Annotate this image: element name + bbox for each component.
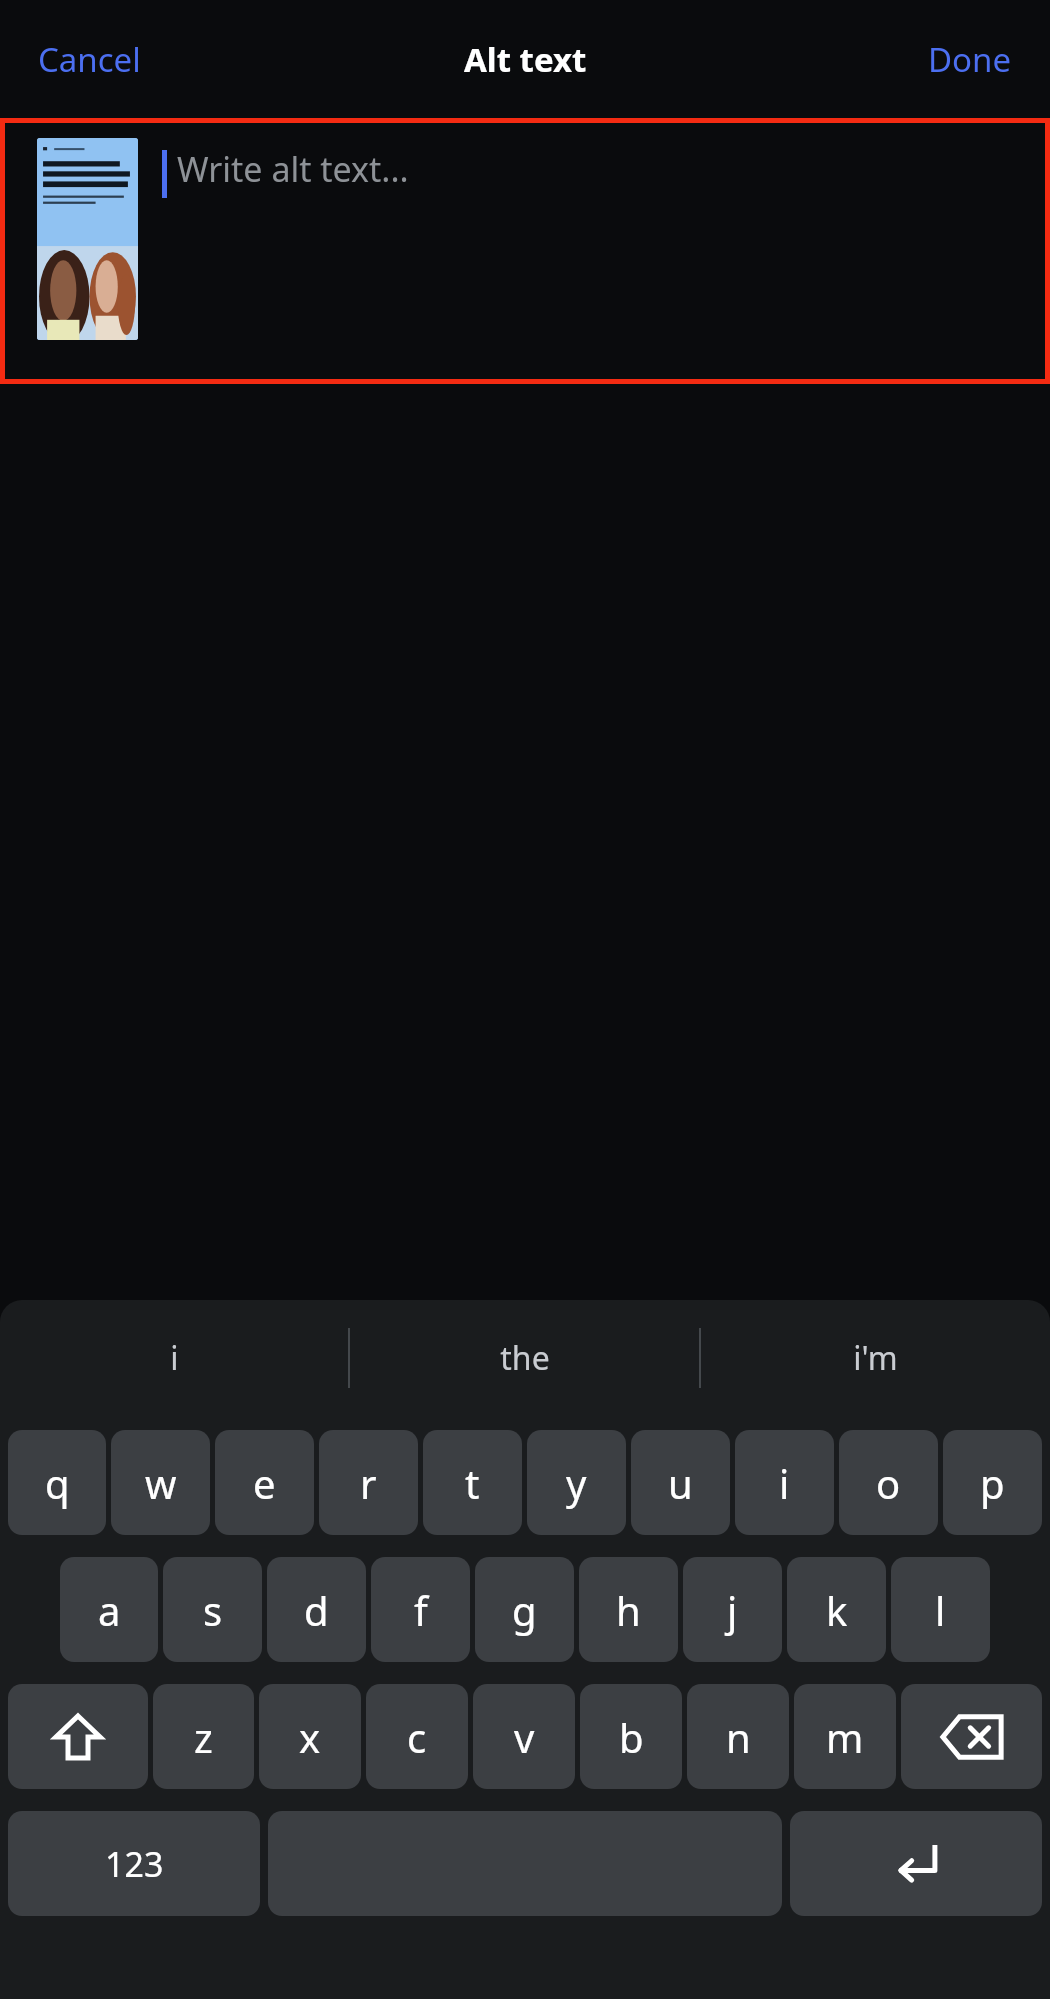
button[interactable]: m — [794, 1684, 896, 1789]
staticText: b — [619, 1710, 644, 1764]
button[interactable]: h — [579, 1557, 678, 1662]
staticText: h — [616, 1583, 641, 1637]
button[interactable]: r — [319, 1430, 418, 1535]
staticText: i — [170, 1336, 179, 1380]
button[interactable]: Cancel — [20, 27, 159, 92]
staticText: n — [726, 1710, 751, 1764]
button[interactable]: f — [371, 1557, 470, 1662]
staticText: g — [512, 1583, 537, 1637]
staticText: Cancel — [38, 37, 141, 82]
staticText: d — [304, 1583, 329, 1637]
staticText: the — [500, 1336, 550, 1380]
staticText: f — [414, 1583, 428, 1637]
button[interactable]: v — [473, 1684, 575, 1789]
button[interactable]: Enter — [790, 1811, 1042, 1916]
staticText: y — [566, 1456, 587, 1510]
staticText: r — [360, 1456, 377, 1510]
button[interactable]: n — [687, 1684, 789, 1789]
button[interactable]: Shift — [8, 1684, 148, 1789]
staticText: i — [779, 1456, 790, 1510]
staticText: w — [145, 1456, 177, 1510]
button[interactable]: y — [527, 1430, 626, 1535]
staticText: k — [826, 1583, 848, 1637]
button[interactable]: z — [153, 1684, 254, 1789]
button[interactable]: the — [350, 1300, 699, 1416]
staticText: c — [407, 1710, 427, 1764]
button[interactable]: 123 — [8, 1811, 260, 1916]
button[interactable]: i — [735, 1430, 834, 1535]
staticText: Alt text — [464, 37, 587, 82]
staticText: t — [465, 1456, 480, 1510]
button[interactable]: g — [475, 1557, 574, 1662]
button[interactable]: q — [8, 1430, 106, 1535]
staticText: i'm — [853, 1336, 898, 1380]
button[interactable]: Done — [910, 27, 1030, 92]
button[interactable]: u — [631, 1430, 730, 1535]
staticText: m — [826, 1710, 864, 1764]
button[interactable]: i — [0, 1300, 348, 1416]
staticText: Write alt text... — [177, 146, 409, 192]
button[interactable]: l — [891, 1557, 990, 1662]
button[interactable]: b — [580, 1684, 682, 1789]
button[interactable]: k — [787, 1557, 886, 1662]
staticText: v — [514, 1710, 535, 1764]
staticText: 123 — [105, 1841, 164, 1887]
other: Attached image — [37, 138, 138, 340]
staticText: q — [45, 1456, 70, 1510]
button[interactable]: c — [366, 1684, 468, 1789]
staticText: u — [668, 1456, 693, 1510]
staticText: x — [299, 1710, 321, 1764]
button[interactable]: Backspace — [901, 1684, 1042, 1789]
button[interactable]: Attached image — [0, 118, 1050, 384]
staticText: o — [876, 1456, 901, 1510]
button[interactable]: p — [943, 1430, 1042, 1535]
button[interactable]: o — [839, 1430, 938, 1535]
staticText: s — [203, 1583, 223, 1637]
button[interactable]: x — [259, 1684, 361, 1789]
button[interactable]: d — [267, 1557, 366, 1662]
button[interactable]: w — [111, 1430, 210, 1535]
staticText: e — [253, 1456, 276, 1510]
staticText: Done — [928, 37, 1012, 82]
button[interactable]: a — [60, 1557, 158, 1662]
button[interactable]: t — [423, 1430, 522, 1535]
button[interactable]: s — [163, 1557, 262, 1662]
staticText: p — [980, 1456, 1005, 1510]
staticText: j — [727, 1583, 738, 1637]
button[interactable]: e — [215, 1430, 314, 1535]
staticText: l — [935, 1583, 946, 1637]
button[interactable]: i'm — [701, 1300, 1050, 1416]
button[interactable]: j — [683, 1557, 782, 1662]
staticText: a — [98, 1583, 121, 1637]
staticText: z — [194, 1710, 213, 1764]
